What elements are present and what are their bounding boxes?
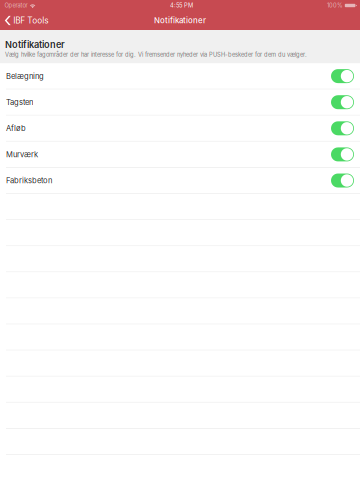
staticText: Fabriksbeton — [6, 176, 52, 185]
staticText: Vælg hvilke fagområder der har interesse… — [5, 51, 307, 58]
button[interactable]: Afløb — [0, 116, 360, 142]
staticText: 4:55 PM — [170, 2, 193, 9]
staticText: Tagsten — [6, 98, 33, 107]
staticText: Afløb — [6, 124, 26, 133]
staticText: Operator — [4, 2, 27, 9]
staticText: Murværk — [6, 150, 38, 159]
staticText: Belægning — [6, 71, 44, 81]
staticText: 100% — [327, 2, 343, 9]
button[interactable]: Belægning — [0, 64, 360, 90]
button[interactable]: Murværk — [0, 142, 360, 168]
button[interactable]: Tagsten — [0, 90, 360, 116]
button[interactable]: Fabriksbeton — [0, 168, 360, 194]
staticText: Notifikationer — [154, 16, 206, 25]
staticText: IBF Tools — [13, 15, 48, 25]
staticText: Notifikationer — [5, 39, 65, 50]
button[interactable]: Back to IBF Tools — [0, 11, 56, 30]
